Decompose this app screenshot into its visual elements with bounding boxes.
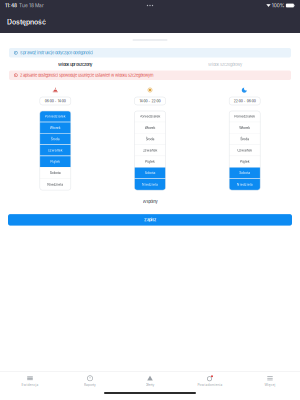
button[interactable]: Sobota [134, 167, 165, 179]
staticText: Tue 18 Mar [17, 3, 44, 8]
staticText: Sprawdź instrukcje dotyczące dostępności [20, 50, 93, 55]
button[interactable]: Poniedziałek [134, 111, 165, 122]
staticText: Sobota [50, 171, 61, 175]
button[interactable]: Więcej [240, 373, 300, 389]
button[interactable]: Niedziela [229, 179, 260, 190]
button[interactable]: Wtorek [229, 122, 260, 134]
staticText: Niedziela [237, 182, 253, 186]
button[interactable]: Ewidencja [0, 373, 60, 389]
staticText: Raporty [84, 383, 96, 387]
staticText: Poniedziałek [45, 114, 66, 118]
button[interactable]: Czwartek [229, 145, 260, 156]
button[interactable]: Sobota [40, 167, 71, 179]
staticText: Czwartek [48, 148, 63, 152]
staticText: Piątek [145, 160, 155, 164]
staticText: Dostępność [7, 18, 46, 26]
button[interactable]: Poniedziałek [229, 111, 260, 122]
staticText: Zapisz [144, 217, 156, 222]
button[interactable]: Niedziela [40, 179, 71, 190]
staticText: Ewidencja [21, 383, 38, 387]
button[interactable]: Czwartek [40, 145, 71, 156]
staticText: Niedziela [47, 182, 63, 186]
staticText: Oferty [145, 383, 154, 387]
staticText: Wtorek [50, 126, 61, 130]
staticText: Środa [240, 137, 249, 141]
button[interactable]: Wtorek [40, 122, 71, 134]
button[interactable]: Sobota [229, 167, 260, 179]
staticText: 11:48 [5, 3, 17, 8]
staticText: Widok uproszczony [58, 62, 92, 67]
staticText: Czwartek [142, 148, 157, 152]
staticText: Zapisanie dostępności spowoduje usunięci… [20, 73, 154, 78]
staticText: Piątek [240, 160, 250, 164]
staticText: Niedziela [142, 182, 158, 186]
button[interactable]: Piątek [134, 156, 165, 167]
staticText: Czwartek [237, 148, 252, 152]
staticText: Środa [145, 137, 154, 141]
staticText: Sobota [144, 171, 155, 175]
staticText: Sobota [239, 171, 250, 175]
button[interactable]: Zapisz [8, 214, 292, 226]
staticText: 22:00 - 06:00 [234, 99, 256, 103]
staticText: Środa [51, 137, 60, 141]
staticText: Więcej [264, 383, 275, 387]
button[interactable]: Piątek [229, 156, 260, 167]
button[interactable]: Wtorek [134, 122, 165, 134]
staticText: Widok szczegółowy [208, 62, 242, 67]
button[interactable]: Czwartek [134, 145, 165, 156]
staticText: Wtorek [144, 126, 155, 130]
staticText: Piątek [50, 160, 60, 164]
staticText: 14:00 - 22:00 [139, 99, 160, 103]
button[interactable]: Środa [229, 134, 260, 145]
button[interactable]: Widok szczegółowy [150, 59, 300, 69]
staticText: Wspólny [142, 199, 157, 204]
button[interactable]: Środa [134, 134, 165, 145]
button[interactable]: Raporty [60, 373, 120, 389]
staticText: Powiadomienia [197, 383, 222, 387]
staticText: 100% [271, 3, 285, 8]
button[interactable]: Oferty [120, 373, 180, 389]
staticText: 06:00 - 14:00 [45, 99, 66, 103]
staticText: Wtorek [239, 126, 250, 130]
button[interactable]: Poniedziałek [40, 111, 71, 122]
button[interactable]: Powiadomienia [180, 373, 240, 389]
button[interactable]: Widok uproszczony [0, 59, 150, 69]
button[interactable]: Środa [40, 134, 71, 145]
staticText: Poniedziałek [234, 114, 255, 118]
staticText: Poniedziałek [139, 114, 160, 118]
button[interactable]: Piątek [40, 156, 71, 167]
button[interactable]: Niedziela [134, 179, 165, 190]
